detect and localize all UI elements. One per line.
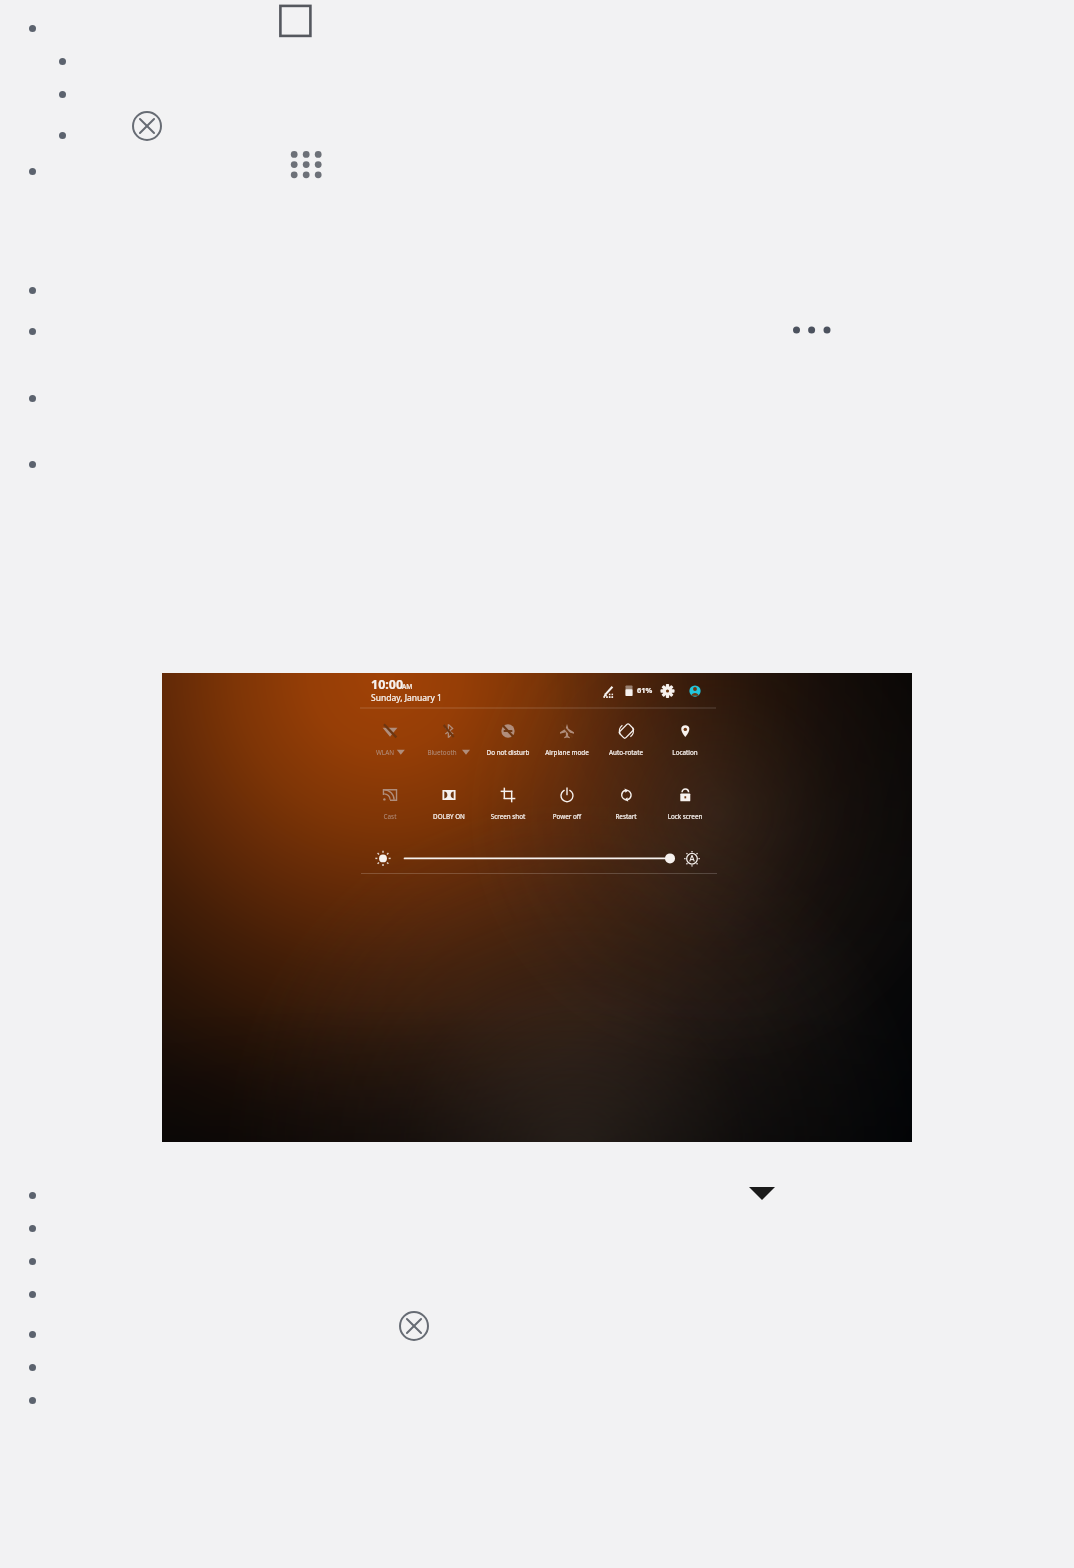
staticText: 61% [637,685,653,695]
staticText: Lock screen [630,812,740,824]
button[interactable] [598,720,654,760]
staticText: Restart [571,812,681,824]
staticText: Do not disturb [453,748,563,760]
button[interactable]: Apps [288,148,322,182]
button[interactable]: Close [398,1310,430,1342]
button[interactable] [480,784,536,824]
button[interactable] [657,784,713,824]
staticText: AM [402,682,413,691]
staticText: Power off [512,812,622,824]
button[interactable] [357,720,413,760]
button[interactable] [539,784,595,824]
staticText: Cast [335,812,445,824]
button[interactable]: Expand [748,1184,776,1202]
staticText: DOLBY ON [394,812,504,824]
staticText: Sunday, January 1 [371,692,442,704]
button[interactable] [539,720,595,760]
button[interactable]: Brightness [367,847,507,871]
staticText: Bluetooth [387,748,497,760]
staticText: Airplane mode [512,748,622,760]
staticText: 10:00 [371,676,404,693]
button[interactable]: Recents [277,3,312,38]
button[interactable]: Close [131,110,163,142]
staticText: WLAN [330,748,440,760]
button[interactable] [598,784,654,824]
button[interactable] [657,720,713,760]
button[interactable] [480,720,536,760]
button[interactable] [362,784,418,824]
button[interactable] [414,720,470,760]
button[interactable] [421,784,477,824]
staticText: Auto-rotate [571,748,681,760]
staticText: Location [630,748,740,760]
staticText: Screen shot [453,812,563,824]
button[interactable]: More options [789,323,836,337]
